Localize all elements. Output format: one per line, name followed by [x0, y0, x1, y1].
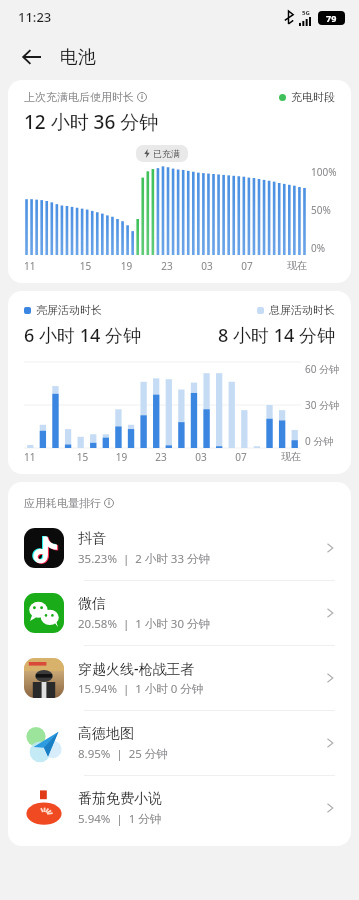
staticText: 穿越火线-枪战王者	[78, 659, 195, 678]
staticText: 19	[106, 259, 147, 273]
staticText: 60 分钟	[305, 362, 340, 376]
staticText: 息屏活动时长	[269, 303, 335, 317]
staticText: 12 小时 36 分钟	[24, 109, 159, 135]
button[interactable]: 微信	[8, 581, 351, 645]
staticText: 79	[326, 12, 337, 24]
staticText: 亮屏活动时长	[36, 303, 102, 317]
staticText: 高德地图	[78, 725, 134, 743]
staticText: 100%	[311, 165, 337, 179]
staticText: 番茄免费小说	[78, 790, 162, 808]
button[interactable]: 抖音	[8, 516, 351, 580]
staticText: 07	[227, 259, 267, 273]
staticText: 07	[221, 450, 261, 464]
staticText: 微信	[78, 595, 106, 613]
staticText: 现在	[261, 450, 301, 463]
staticText: 0 分钟	[305, 434, 334, 448]
staticText: 23	[141, 450, 181, 464]
staticText: 20.58% | 1 小时 30 分钟	[78, 616, 210, 632]
staticText: 03	[181, 450, 221, 464]
staticText: 23	[147, 259, 187, 273]
staticText: 0%	[311, 241, 326, 255]
staticText: 抖音	[78, 530, 106, 548]
staticText: 现在	[267, 259, 307, 272]
staticText: 03	[187, 259, 227, 273]
staticText: 11	[24, 450, 63, 464]
staticText: 已充满	[153, 148, 180, 159]
staticText: 8 小时 14 分钟	[218, 323, 335, 348]
staticText: 35.23% | 2 小时 33 分钟	[78, 551, 210, 567]
staticText: 50%	[311, 203, 331, 217]
staticText: 应用耗电量排行	[24, 496, 101, 510]
staticText: 19	[102, 450, 141, 464]
staticText: 5G	[302, 9, 310, 17]
staticText: 11:23	[18, 8, 52, 26]
staticText: 15	[63, 450, 102, 464]
button[interactable]: Back	[14, 39, 50, 75]
staticText: 11	[24, 259, 65, 273]
button[interactable]: 穿越火线-枪战王者	[8, 646, 351, 710]
staticText: 8.95% | 25 分钟	[78, 746, 168, 762]
staticText: 6 小时 14 分钟	[24, 323, 141, 348]
staticText: 上次充满电后使用时长	[24, 90, 134, 104]
button[interactable]: 高德地图	[8, 711, 351, 775]
staticText: 电池	[60, 46, 96, 69]
staticText: 15	[65, 259, 106, 273]
staticText: 5.94% | 1 分钟	[78, 811, 162, 827]
staticText: 30 分钟	[305, 398, 340, 412]
staticText: 充电时段	[291, 90, 335, 104]
button[interactable]: 番茄免费小说	[8, 776, 351, 840]
staticText: 15.94% | 1 小时 0 分钟	[78, 681, 204, 697]
